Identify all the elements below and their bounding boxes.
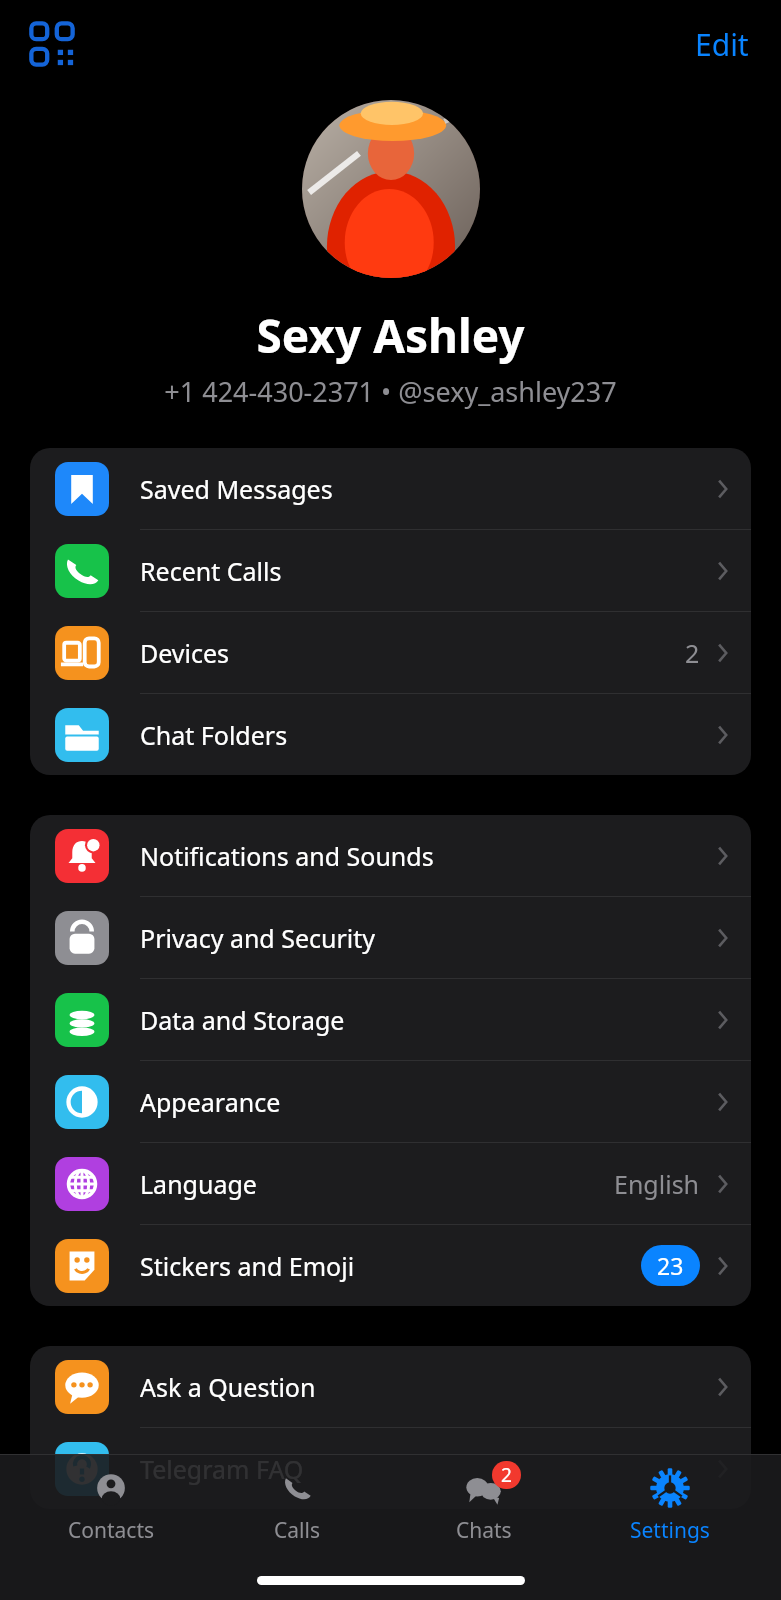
button[interactable]: Scan QR code: [28, 20, 76, 68]
button[interactable]: Telegram FAQ: [30, 1428, 751, 1509]
staticText: 2: [685, 636, 700, 670]
staticText: Calls: [274, 1516, 320, 1545]
button[interactable]: 2: [409, 1455, 559, 1545]
staticText: Telegram FAQ: [140, 1452, 714, 1486]
button[interactable]: Stickers and Emoji: [30, 1225, 751, 1306]
staticText: English: [614, 1167, 700, 1201]
staticText: Chats: [456, 1516, 512, 1545]
staticText: 2: [501, 1462, 512, 1488]
button[interactable]: Language: [30, 1143, 751, 1225]
staticText: Language: [140, 1167, 614, 1201]
button[interactable]: Privacy and Security: [30, 897, 751, 979]
staticText: Recent Calls: [140, 554, 714, 588]
button[interactable]: Devices: [30, 612, 751, 694]
button[interactable]: Notifications and Sounds: [30, 815, 751, 897]
button[interactable]: Appearance: [30, 1061, 751, 1143]
button[interactable]: Calls: [222, 1455, 372, 1545]
staticText: Saved Messages: [140, 472, 714, 506]
button[interactable]: Contacts: [36, 1455, 186, 1545]
staticText: 23: [657, 1250, 684, 1281]
button[interactable]: Settings: [595, 1455, 745, 1545]
button[interactable]: [302, 100, 480, 278]
button[interactable]: Recent Calls: [30, 530, 751, 612]
staticText: Chat Folders: [140, 718, 714, 752]
staticText: Privacy and Security: [140, 921, 714, 955]
staticText: Contacts: [68, 1516, 155, 1545]
staticText: Settings: [630, 1516, 710, 1545]
staticText: Sexy Ashley: [0, 304, 781, 367]
staticText: +1 424-430-2371 • @sexy_ashley237: [0, 373, 781, 410]
staticText: Notifications and Sounds: [140, 839, 714, 873]
staticText: Ask a Question: [140, 1370, 714, 1404]
button[interactable]: Edit: [687, 16, 757, 73]
staticText: Data and Storage: [140, 1003, 714, 1037]
staticText: Devices: [140, 636, 685, 670]
button[interactable]: Saved Messages: [30, 448, 751, 530]
button[interactable]: Chat Folders: [30, 694, 751, 775]
button[interactable]: Ask a Question: [30, 1346, 751, 1428]
staticText: Stickers and Emoji: [140, 1249, 641, 1283]
button[interactable]: Data and Storage: [30, 979, 751, 1061]
staticText: Appearance: [140, 1085, 714, 1119]
staticText: Edit: [695, 24, 749, 65]
